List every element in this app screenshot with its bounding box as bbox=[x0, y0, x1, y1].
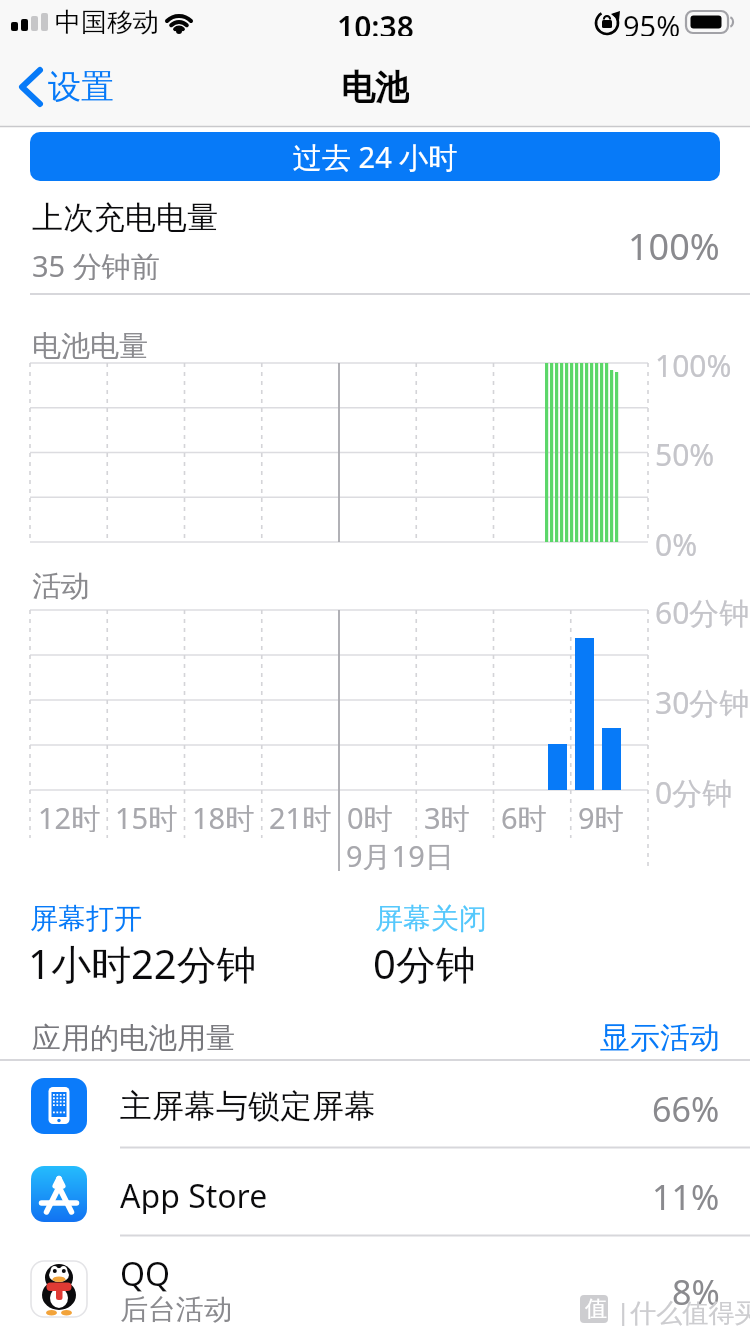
staticText: 0分钟 bbox=[373, 936, 476, 986]
staticText: 应用的电池用量 bbox=[32, 1020, 235, 1056]
staticText: 设置 bbox=[48, 66, 114, 108]
staticText: 9时 bbox=[578, 798, 624, 832]
button[interactable]: 过去 24 小时 bbox=[30, 132, 720, 181]
staticText: 上次充电电量 bbox=[32, 198, 218, 234]
button[interactable] bbox=[0, 1061, 750, 1147]
staticText: QQ bbox=[120, 1252, 170, 1292]
staticText: 30分钟 bbox=[655, 682, 750, 718]
staticText: 中国移动 bbox=[55, 6, 159, 36]
staticText: 后台活动 bbox=[120, 1292, 232, 1326]
staticText: App Store bbox=[120, 1174, 268, 1214]
staticText: 100% bbox=[655, 345, 732, 381]
button[interactable] bbox=[0, 1237, 750, 1334]
staticText: 8% bbox=[672, 1269, 720, 1309]
staticText: 100% bbox=[628, 222, 720, 262]
staticText: 屏幕打开 bbox=[30, 901, 142, 933]
button[interactable]: 显示活动 bbox=[560, 1016, 730, 1060]
staticText: 0% bbox=[655, 524, 698, 560]
staticText: 活动 bbox=[32, 568, 90, 602]
staticText: 9月19日 bbox=[346, 836, 454, 870]
staticText: 18时 bbox=[192, 798, 255, 832]
staticText: 12时 bbox=[38, 798, 101, 832]
staticText: |什么值得买 bbox=[616, 1294, 750, 1326]
staticText: 11% bbox=[652, 1174, 720, 1214]
staticText: 3时 bbox=[424, 798, 470, 832]
staticText: 0分钟 bbox=[655, 772, 733, 808]
staticText: 主屏幕与锁定屏幕 bbox=[120, 1086, 376, 1126]
staticText: 0时 bbox=[347, 798, 393, 832]
staticText: 6时 bbox=[501, 798, 547, 832]
staticText: 屏幕关闭 bbox=[375, 901, 487, 933]
button[interactable] bbox=[0, 1149, 750, 1235]
staticText: 电池电量 bbox=[32, 328, 148, 362]
staticText: 电池 bbox=[341, 66, 409, 108]
staticText: 66% bbox=[652, 1086, 720, 1126]
staticText: 50% bbox=[655, 434, 715, 470]
staticText: 60分钟 bbox=[655, 592, 750, 628]
staticText: 显示活动 bbox=[600, 1019, 720, 1057]
staticText: 95% bbox=[623, 6, 681, 36]
staticText: 35 分钟前 bbox=[32, 246, 160, 280]
button[interactable] bbox=[14, 62, 134, 112]
staticText: 值 bbox=[585, 1295, 607, 1323]
staticText: 10:38 bbox=[337, 6, 414, 36]
staticText: 21时 bbox=[269, 798, 332, 832]
staticText: 15时 bbox=[115, 798, 178, 832]
staticText: 过去 24 小时 bbox=[293, 137, 458, 177]
staticText: 1小时22分钟 bbox=[28, 936, 257, 986]
